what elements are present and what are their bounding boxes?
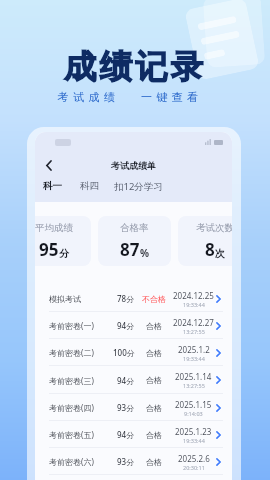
staticText: 94分 xyxy=(117,429,135,440)
staticText: 合格 xyxy=(146,348,162,358)
button[interactable]: 扣12分学习 xyxy=(114,180,163,193)
staticText: 考前密卷(三) xyxy=(49,375,94,386)
staticText: 13:27:55 xyxy=(183,328,205,335)
button[interactable]: 平均成绩 xyxy=(35,216,91,266)
staticText: 考试成绩 一键查看 xyxy=(0,89,265,104)
staticText: 合格 xyxy=(146,321,162,331)
staticText: 2024.12.27 xyxy=(173,317,214,328)
button[interactable]: 模拟考试 xyxy=(35,285,232,312)
staticText: 93分 xyxy=(117,402,135,413)
staticText: 考前密卷(一) xyxy=(49,320,94,331)
button[interactable]: 考前密卷(六) xyxy=(35,448,232,475)
button[interactable]: 考前密卷(一) xyxy=(35,312,232,339)
staticText: 2025.1.23 xyxy=(175,426,212,437)
staticText: 考前密卷(二) xyxy=(49,347,94,358)
staticText: 次 xyxy=(215,247,225,260)
staticText: 平均成绩 xyxy=(35,222,73,234)
staticText: 95 xyxy=(39,238,59,261)
staticText: 94分 xyxy=(117,375,135,386)
staticText: 2024.12.25 xyxy=(173,290,214,301)
staticText: 9:14:03 xyxy=(184,410,203,417)
button[interactable]: 合格率 xyxy=(98,216,171,266)
button[interactable]: 考前密卷(二) xyxy=(35,339,232,366)
staticText: 成绩记录 xyxy=(0,47,270,88)
staticText: 分 xyxy=(59,247,69,260)
button[interactable]: 考前密卷(四) xyxy=(35,394,232,421)
staticText: 19:33:44 xyxy=(183,355,205,362)
staticText: 13:27:55 xyxy=(183,382,205,389)
staticText: 78分 xyxy=(117,293,135,304)
staticText: 2025.1.14 xyxy=(175,371,212,382)
staticText: 2025.1.15 xyxy=(175,399,212,410)
staticText: 合格 xyxy=(146,403,162,413)
staticText: 2025.1.2 xyxy=(178,344,210,355)
staticText: 8 xyxy=(205,238,215,261)
button[interactable]: 科四 xyxy=(80,180,99,192)
staticText: 87 xyxy=(120,238,140,261)
staticText: 合格率 xyxy=(120,222,149,234)
staticText: 合格 xyxy=(146,457,162,467)
staticText: 考前密卷(五) xyxy=(49,429,94,440)
staticText: 100分 xyxy=(113,347,135,358)
staticText: 考试次数 xyxy=(196,222,232,234)
button[interactable]: 返回 xyxy=(39,156,57,174)
button[interactable]: 考试次数 xyxy=(178,216,232,266)
staticText: 模拟考试 xyxy=(49,294,81,304)
staticText: 19:33:44 xyxy=(183,301,205,308)
staticText: 94分 xyxy=(117,320,135,331)
staticText: % xyxy=(140,246,150,260)
button[interactable]: 考前密卷(三) xyxy=(35,366,232,394)
staticText: 20:30:11 xyxy=(183,464,205,471)
staticText: 考前密卷(六) xyxy=(49,456,94,467)
staticText: 不合格 xyxy=(142,294,166,304)
staticText: 考前密卷(四) xyxy=(49,402,94,413)
staticText: 合格 xyxy=(146,430,162,440)
staticText: 2025.2.6 xyxy=(178,453,210,464)
staticText: 93分 xyxy=(117,456,135,467)
staticText: 合格 xyxy=(146,375,162,385)
staticText: 考试成绩单 xyxy=(111,160,156,171)
button[interactable]: 科一 xyxy=(40,180,65,192)
staticText: 19:33:44 xyxy=(183,437,205,444)
button[interactable]: 考前密卷(五) xyxy=(35,421,232,448)
staticText: 科一 xyxy=(43,180,62,192)
